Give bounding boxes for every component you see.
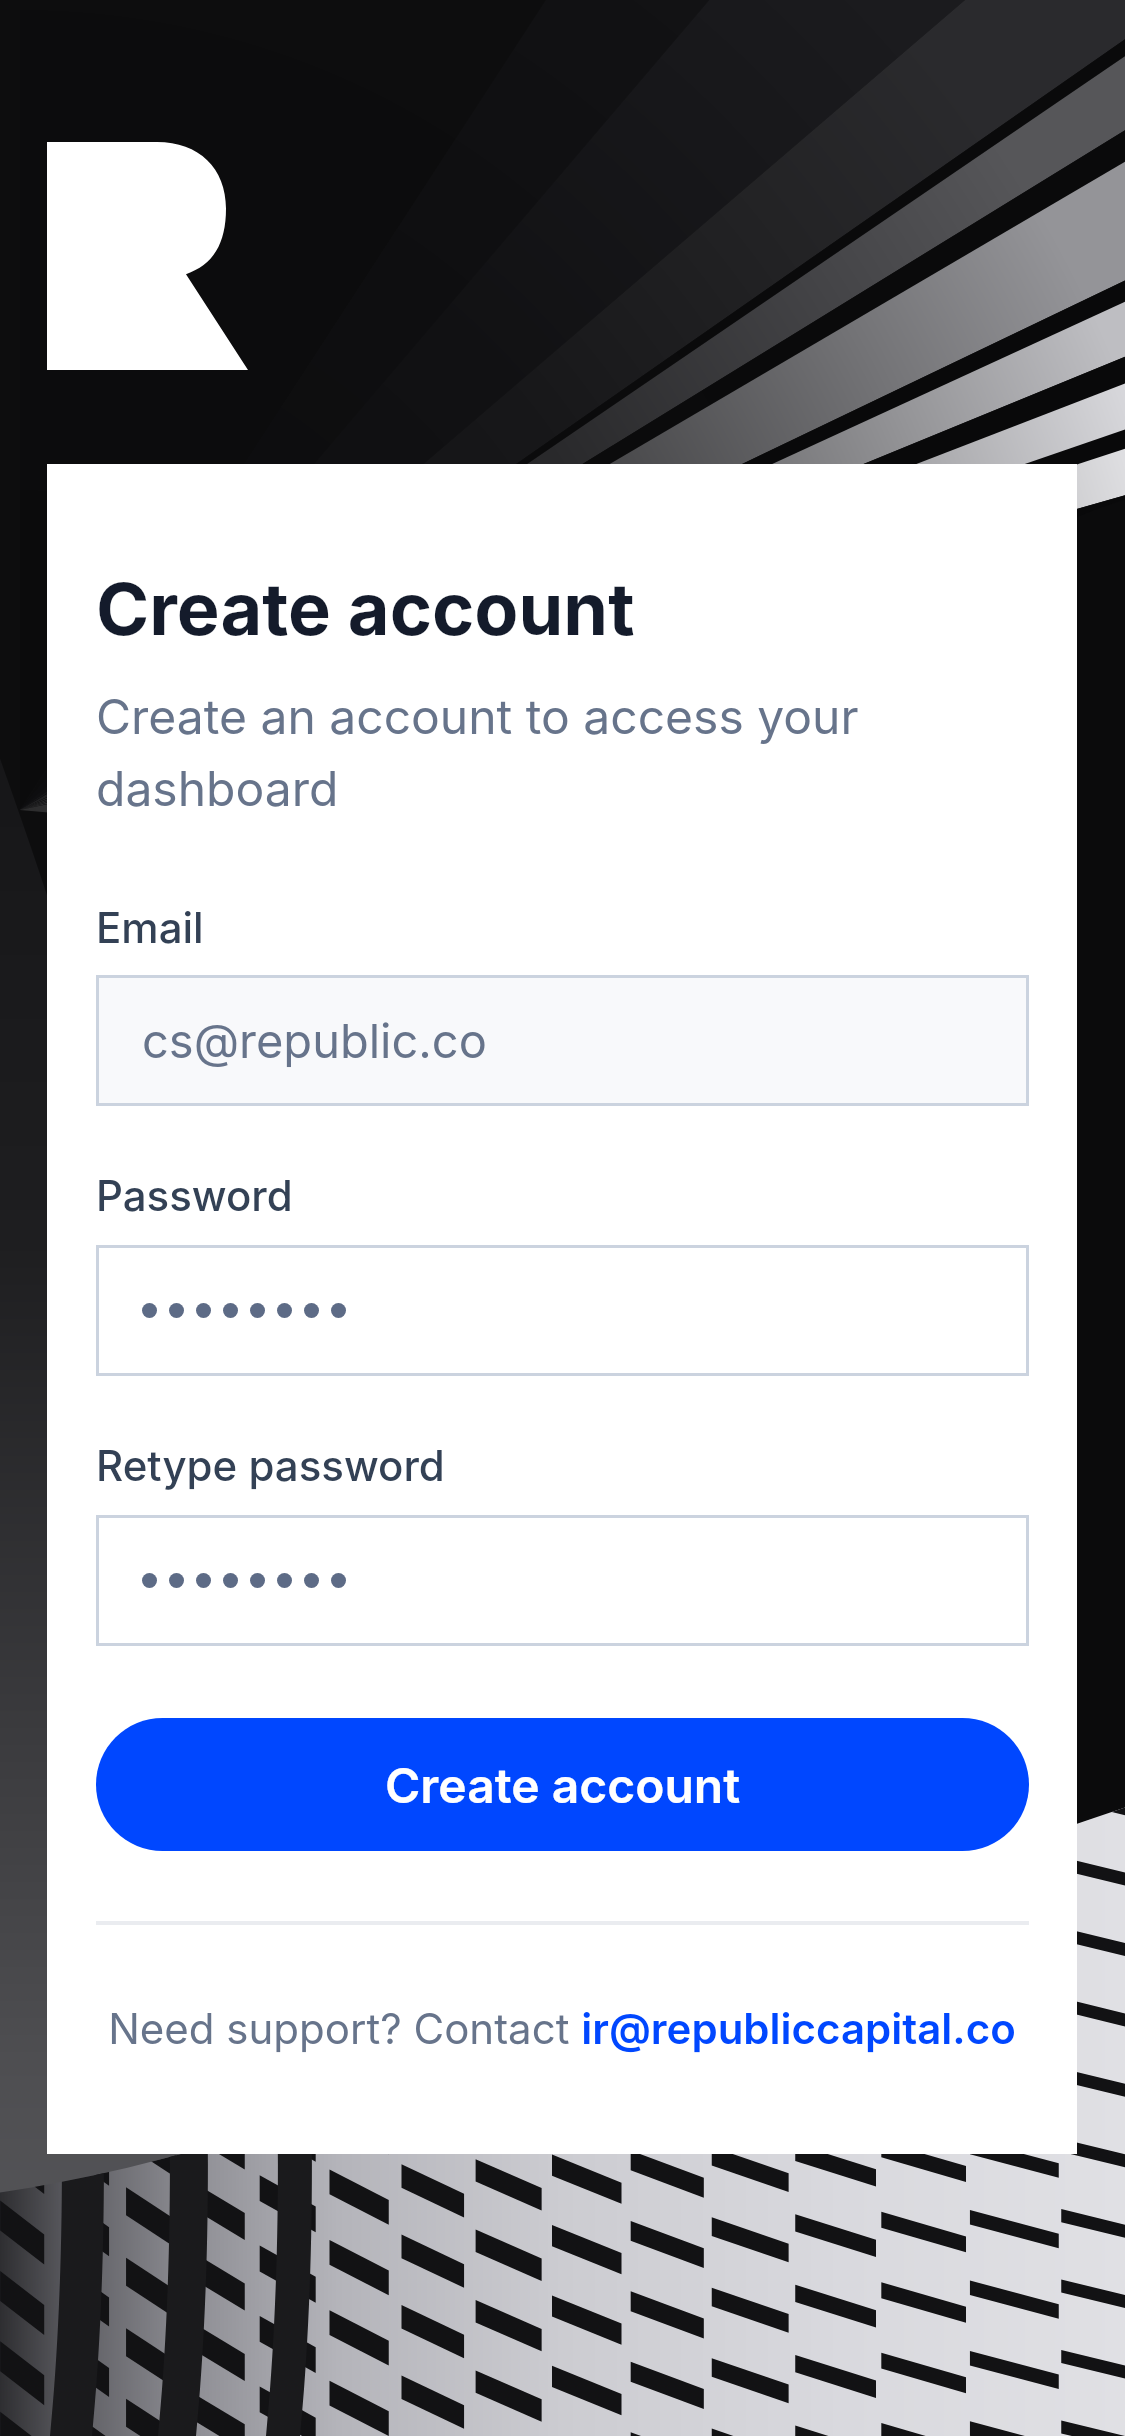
staticText: Create account bbox=[385, 1756, 741, 1814]
button[interactable]: Need support? Contact ir@republiccapital… bbox=[108, 2003, 1016, 2054]
staticText: Retype password bbox=[96, 1440, 445, 1491]
button[interactable]: cs@republic.co bbox=[96, 975, 1029, 1106]
staticText: Password bbox=[96, 1170, 293, 1221]
staticText: Email bbox=[96, 902, 204, 953]
staticText: Create account bbox=[96, 565, 635, 652]
button[interactable] bbox=[96, 1515, 1029, 1646]
staticText: Create an account to access your dashboa… bbox=[96, 687, 896, 817]
staticText: cs@republic.co bbox=[142, 1012, 487, 1069]
button[interactable] bbox=[96, 1245, 1029, 1376]
other: Republic logo bbox=[47, 142, 247, 370]
button[interactable]: Create account bbox=[96, 1718, 1029, 1851]
